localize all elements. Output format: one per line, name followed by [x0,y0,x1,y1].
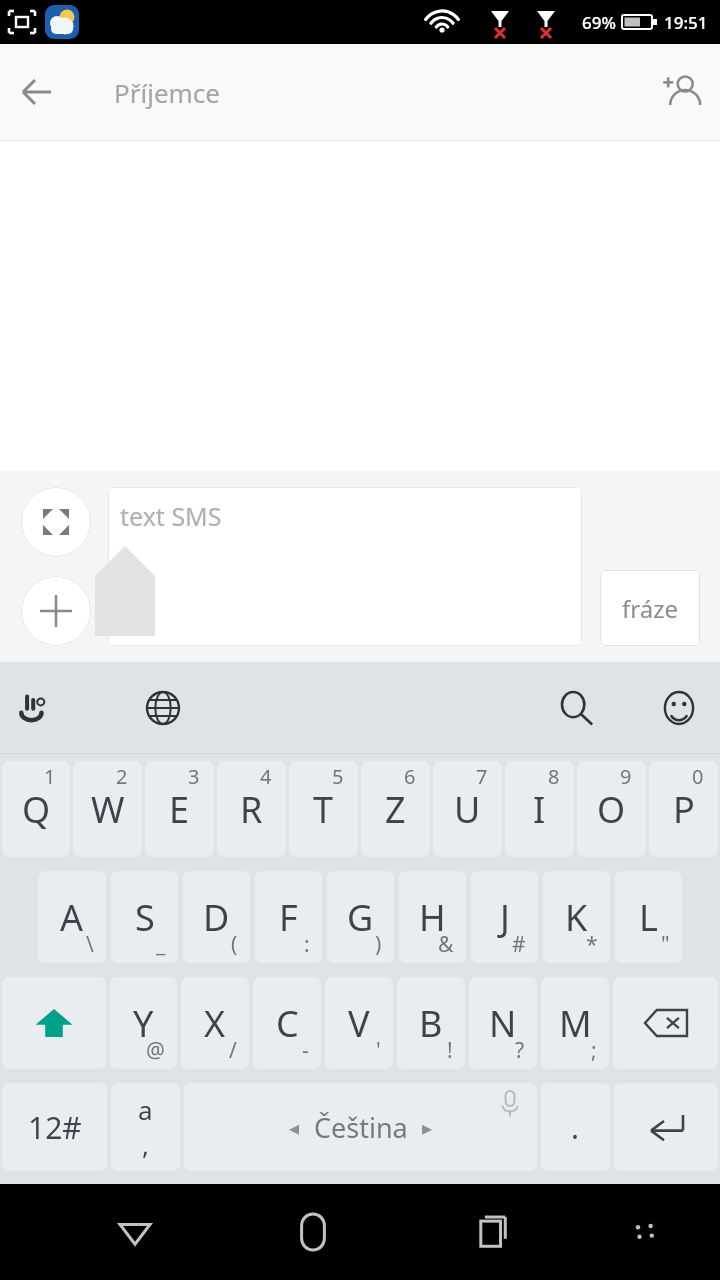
staticText: G [347,893,374,942]
staticText: 12# [28,1107,82,1148]
button[interactable]: Backspace [613,977,718,1069]
button[interactable]: Expand [21,487,91,557]
button[interactable]: P [649,761,718,857]
button[interactable]: Enter [614,1083,718,1171]
staticText: W [91,785,125,834]
staticText: * [586,930,598,959]
button[interactable]: More options [608,1196,680,1268]
staticText: A [60,893,84,942]
staticText: 3 [188,763,200,790]
button[interactable]: text SMS [108,487,582,646]
staticText: ; [591,1036,597,1065]
button[interactable]: Add attachment [21,576,91,646]
staticText: L [639,893,658,942]
button[interactable]: Q [2,761,70,857]
staticText: H [419,893,446,942]
button[interactable]: T [289,761,358,857]
button[interactable]: K [543,871,610,963]
button[interactable]: ◂ [184,1083,537,1171]
button[interactable]: X [181,977,249,1069]
staticText: S [135,893,155,942]
staticText: 2 [116,763,128,790]
staticText: / [229,1036,237,1065]
staticText: , [142,1127,149,1162]
button[interactable]: R [217,761,286,857]
staticText: T [313,785,334,834]
staticText: 8 [548,763,560,790]
staticText: Q [22,785,51,834]
button[interactable]: Add recipient [644,54,720,130]
button[interactable]: F [255,871,322,963]
button[interactable]: Home [277,1196,349,1268]
button[interactable]: Y [110,977,177,1069]
staticText: C [276,999,299,1048]
staticText: @ [146,1036,165,1065]
staticText: \ [86,930,94,959]
staticText: & [438,930,454,959]
staticText: # [512,930,526,959]
staticText: 19:51 [664,11,708,34]
button[interactable]: Accents [111,1083,180,1171]
button[interactable]: M [541,977,609,1069]
staticText: V [348,999,370,1048]
button[interactable]: H [399,871,466,963]
button[interactable]: Change language [128,673,198,743]
staticText: 7 [476,763,488,790]
button[interactable]: . [541,1083,610,1171]
staticText: P [673,785,695,834]
staticText: ? [515,1036,525,1065]
button[interactable]: Search [542,673,612,743]
button[interactable]: A [38,871,106,963]
button[interactable]: O [577,761,646,857]
button[interactable]: Keyboard settings [0,662,70,754]
button[interactable]: J [471,871,538,963]
staticText: 69% [582,11,616,34]
staticText: 4 [260,763,272,790]
button[interactable]: Z [361,761,430,857]
staticText: : [304,930,310,959]
staticText: ◂ [289,1116,300,1139]
staticText: ( [231,930,238,959]
button[interactable]: G [327,871,394,963]
button[interactable]: Back [0,56,72,128]
button[interactable]: U [433,761,502,857]
button[interactable]: W [73,761,142,857]
staticText: I [533,785,546,834]
staticText: - [302,1036,309,1065]
button[interactable]: Recent apps [455,1196,527,1268]
staticText: D [203,893,230,942]
staticText: Příjemce [114,75,221,110]
button[interactable]: fráze [600,570,700,646]
staticText: Y [133,999,154,1048]
staticText: 5 [332,763,344,790]
staticText: J [500,893,510,942]
button[interactable]: E [145,761,214,857]
button[interactable]: Emoji [644,673,714,743]
button[interactable]: I [505,761,574,857]
staticText: fráze [622,592,678,625]
button[interactable]: Shift [2,977,106,1069]
staticText: ' [376,1036,381,1065]
staticText: ) [375,930,382,959]
staticText: a [138,1092,153,1127]
button[interactable]: Back [99,1196,171,1268]
staticText: 1 [44,763,56,790]
button[interactable]: N [469,977,537,1069]
staticText: B [419,999,443,1048]
button[interactable]: B [397,977,465,1069]
staticText: E [169,785,190,834]
staticText: N [489,999,517,1048]
button[interactable]: 12# [2,1083,107,1171]
button[interactable]: S [111,871,178,963]
staticText: R [240,785,263,834]
staticText: Čeština [314,1109,408,1146]
button[interactable]: V [325,977,393,1069]
staticText: M [559,999,592,1048]
staticText: O [597,785,626,834]
staticText: 6 [404,763,416,790]
button[interactable]: C [253,977,321,1069]
staticText: ! [447,1036,453,1065]
button[interactable]: L [615,871,682,963]
button[interactable]: D [183,871,250,963]
staticText: 0 [692,763,704,790]
